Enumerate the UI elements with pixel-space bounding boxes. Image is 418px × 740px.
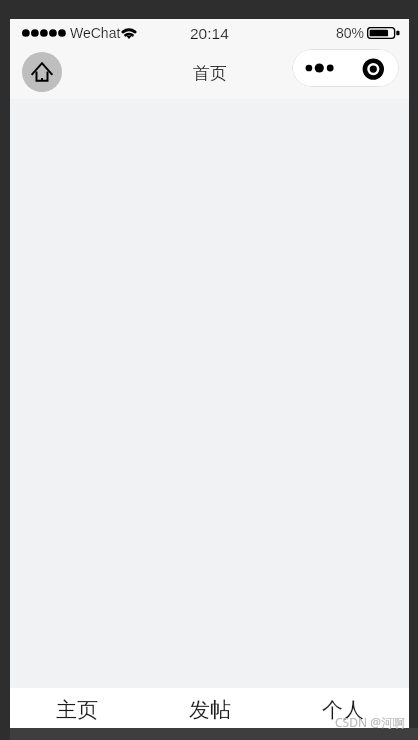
- button[interactable]: More options: [292, 49, 399, 87]
- staticText: 个人: [322, 697, 364, 723]
- staticText: 主页: [56, 697, 98, 723]
- button[interactable]: 发帖: [143, 688, 276, 728]
- button[interactable]: Home: [22, 52, 62, 92]
- staticText: 20:14: [190, 25, 229, 42]
- staticText: 80%: [336, 25, 365, 41]
- button[interactable]: 主页: [10, 688, 143, 728]
- staticText: 首页: [193, 63, 227, 84]
- staticText: WeChat: [70, 25, 121, 41]
- staticText: 发帖: [189, 697, 231, 723]
- staticText: CSDN @河啊: [335, 714, 405, 730]
- button[interactable]: 个人: [276, 688, 409, 728]
